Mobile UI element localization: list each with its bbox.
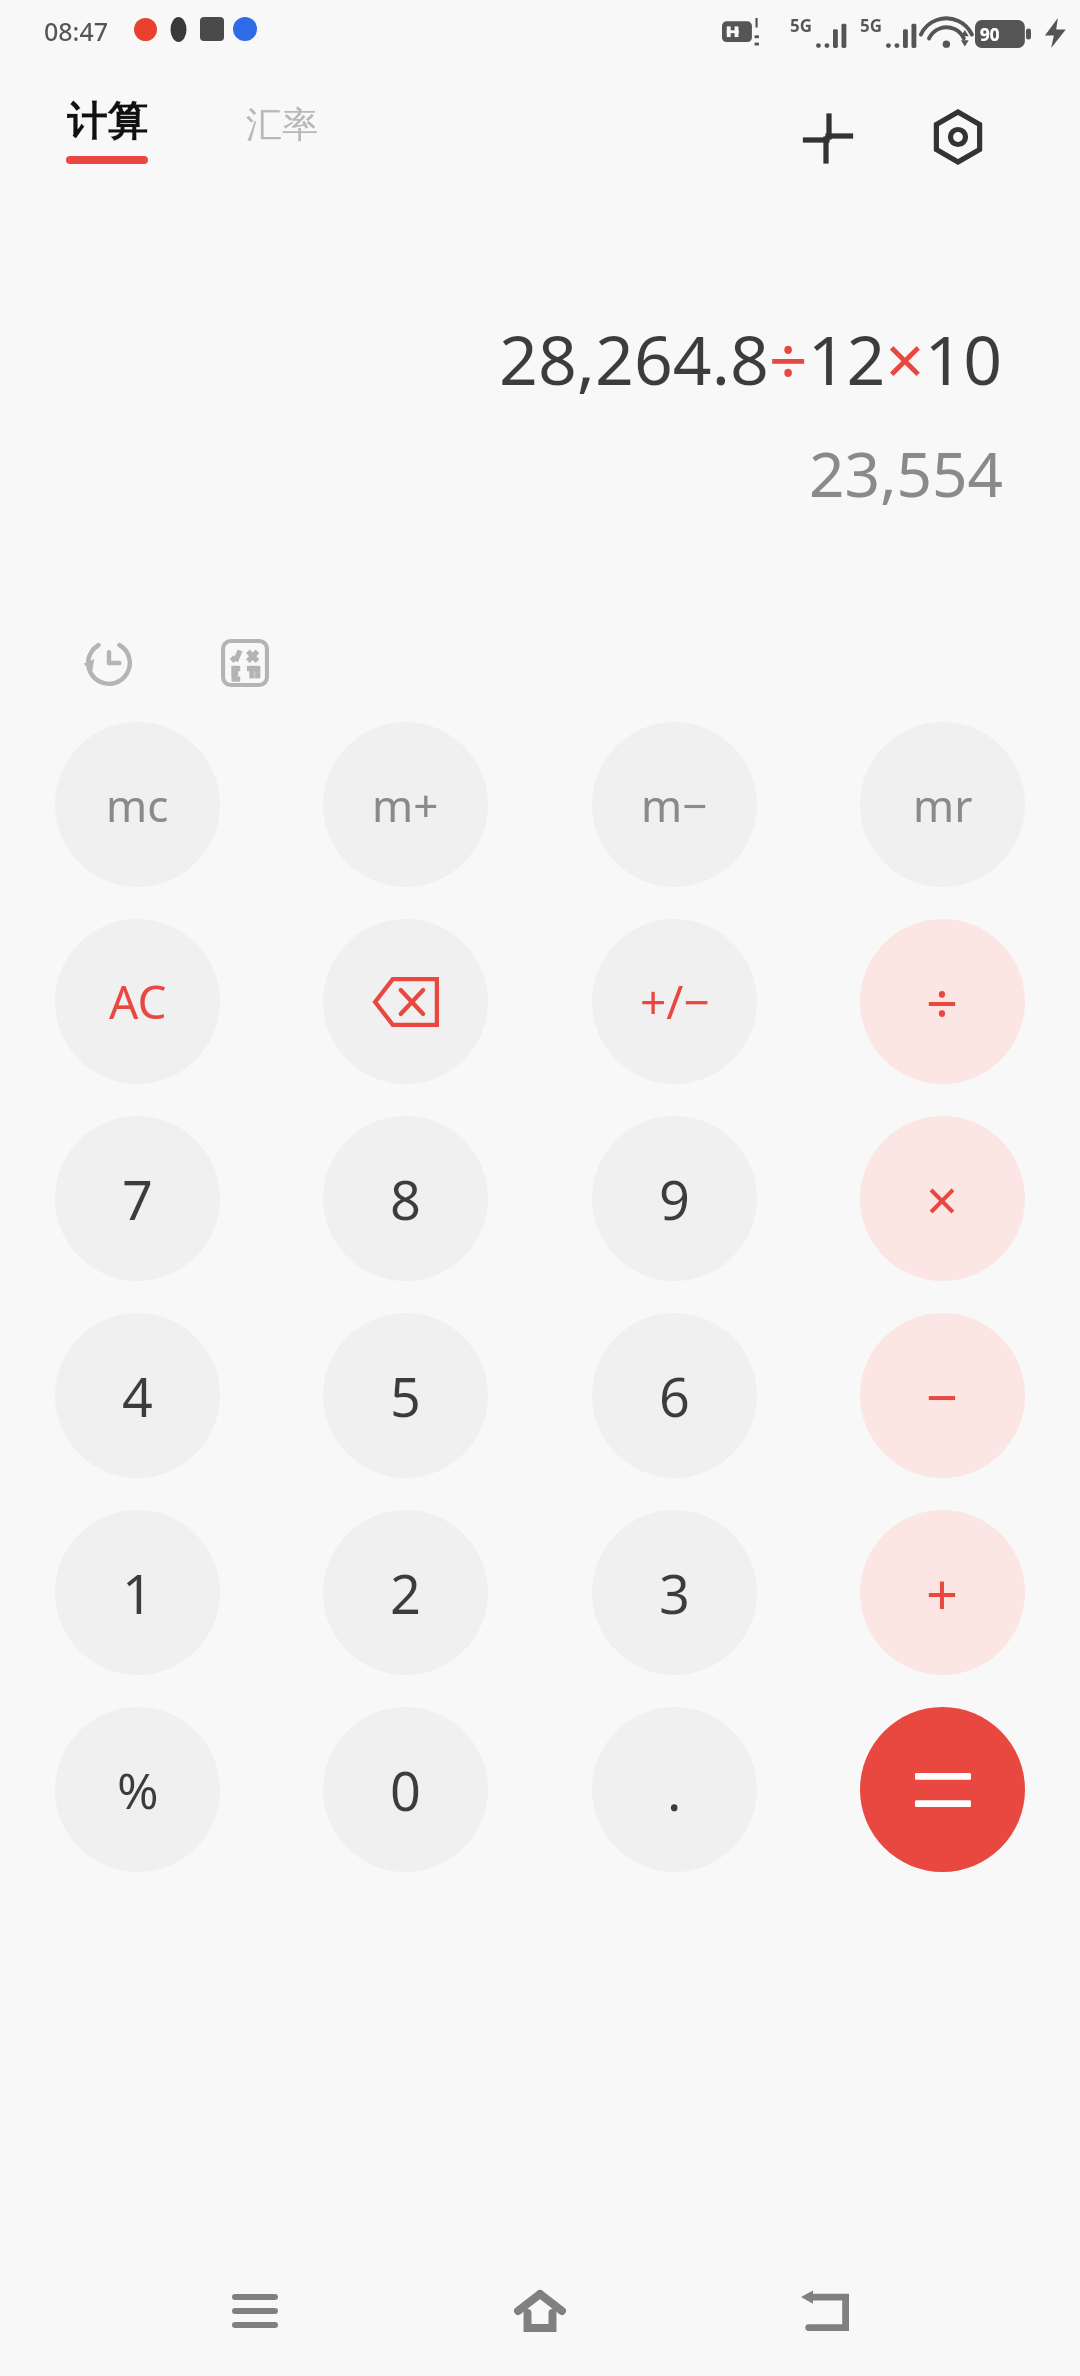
staticText: m+ [372,775,439,835]
staticText: 计算 [67,96,147,146]
staticText: 4 [122,1359,153,1433]
button[interactable]: 3 [592,1510,757,1675]
staticText: 5G [790,14,813,37]
button[interactable]: Scientific calculator [202,620,288,706]
button[interactable]: × [860,1116,1025,1281]
staticText: × [926,1161,959,1237]
staticText: ÷ [926,964,959,1040]
button[interactable]: 1 [55,1510,220,1675]
staticText: 90 [980,23,1000,46]
button[interactable]: Floating window [783,92,873,182]
button[interactable]: m+ [323,722,488,887]
button[interactable]: 汇率 [240,96,324,153]
button[interactable]: 2 [323,1510,488,1675]
button[interactable]: . [592,1707,757,1872]
button[interactable]: mr [860,722,1025,887]
button[interactable]: − [860,1313,1025,1478]
staticText: mr [913,775,973,835]
staticText: 08:47 [44,14,109,48]
staticText: 3 [659,1556,690,1630]
button[interactable]: Back [770,2256,880,2366]
staticText: 8 [390,1162,421,1236]
staticText: 7 [122,1162,153,1236]
button[interactable]: 8 [323,1116,488,1281]
button[interactable]: 5 [323,1313,488,1478]
button[interactable]: 7 [55,1116,220,1281]
button[interactable]: Equals [860,1707,1025,1872]
staticText: mc [106,775,169,835]
staticText: m− [641,775,708,835]
button[interactable]: Recent apps [200,2256,310,2366]
button[interactable]: + [860,1510,1025,1675]
staticText: 9 [659,1162,690,1236]
staticText: % [117,1756,159,1824]
button[interactable]: 6 [592,1313,757,1478]
button[interactable]: ÷ [860,919,1025,1084]
button[interactable]: +/− [592,919,757,1084]
staticText: . [667,1753,682,1827]
button[interactable]: 0 [323,1707,488,1872]
staticText: 28,264.8÷12×10 [499,312,1003,405]
staticText: + [926,1555,959,1631]
staticText: 2 [390,1556,421,1630]
staticText: 5 [390,1359,421,1433]
button[interactable]: % [55,1707,220,1872]
staticText: − [926,1358,959,1434]
button[interactable]: Home [485,2256,595,2366]
button[interactable]: 4 [55,1313,220,1478]
staticText: +/− [640,970,710,1033]
button[interactable]: History [66,620,152,706]
staticText: 0 [390,1753,421,1827]
staticText: 6 [659,1359,690,1433]
staticText: 23,554 [809,431,1003,515]
button[interactable]: m− [592,722,757,887]
button[interactable]: Settings [913,92,1003,182]
button[interactable]: Backspace [323,919,488,1084]
button[interactable]: mc [55,722,220,887]
staticText: AC [109,970,167,1033]
button[interactable]: AC [55,919,220,1084]
staticText: 汇率 [246,102,318,147]
button[interactable]: 9 [592,1116,757,1281]
staticText: 1 [122,1556,153,1630]
staticText: 5G [860,14,883,37]
button[interactable]: 计算 [62,92,152,168]
